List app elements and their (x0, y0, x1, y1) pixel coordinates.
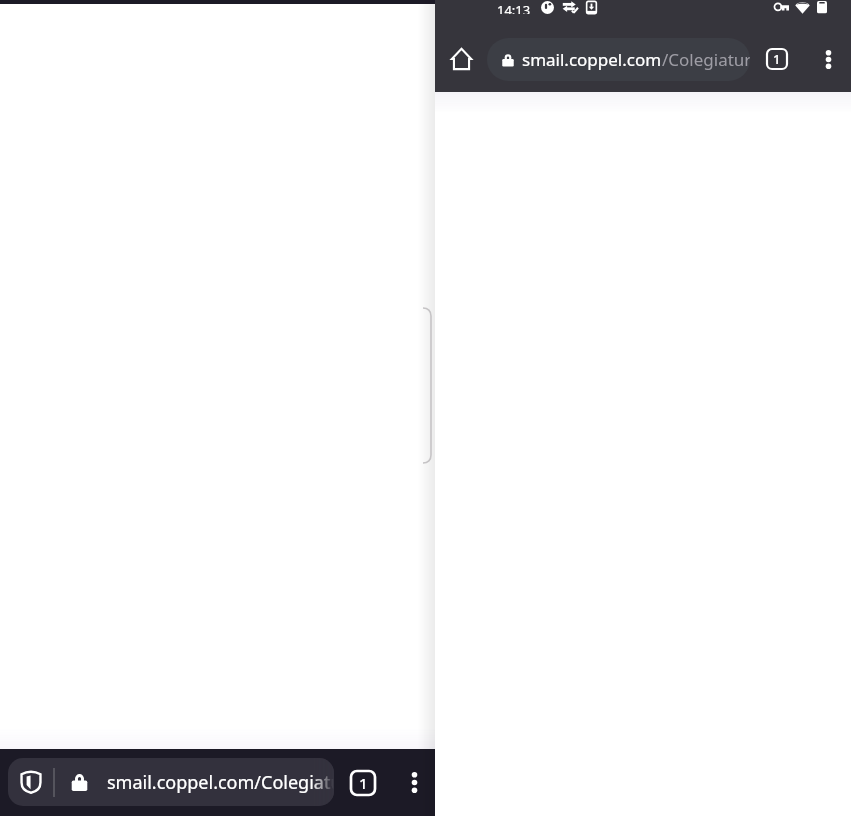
staticText: 1 (359, 773, 368, 793)
staticText: 1 (773, 50, 781, 68)
button[interactable]: smail.coppel.com/Colegiatura (8, 758, 334, 806)
staticText: smail.coppel.com/Colegiatura (107, 770, 334, 795)
button[interactable]: Tabs (343, 763, 383, 803)
button[interactable]: Tabs (757, 39, 797, 79)
button[interactable]: smail.coppel.com (487, 38, 750, 81)
staticText: 14:13 (497, 1, 531, 14)
button[interactable]: More options (394, 762, 434, 802)
staticText: /Colegiatura (662, 48, 750, 71)
staticText: smail.coppel.com (522, 48, 662, 71)
button[interactable]: Home (435, 26, 487, 92)
button[interactable]: More options (808, 39, 848, 79)
